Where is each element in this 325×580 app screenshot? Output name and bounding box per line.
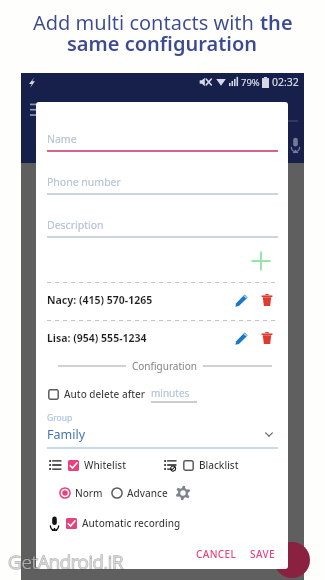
button[interactable]: Whitelist: [47, 458, 127, 472]
staticText: Group: [47, 412, 73, 424]
staticText: Advance: [127, 486, 168, 500]
button[interactable]: Auto delete after: [47, 383, 278, 405]
button[interactable]: Name: [47, 132, 278, 153]
button[interactable]: Delete: [261, 294, 273, 306]
staticText: the: [260, 9, 293, 36]
staticText: Auto delete after: [64, 387, 145, 401]
button[interactable]: Edit: [235, 332, 248, 345]
button[interactable]: Add contact: [274, 542, 310, 578]
staticText: Add multi contacts with: [33, 9, 260, 36]
button[interactable]: Phone number: [47, 175, 278, 196]
button[interactable]: CANCEL: [191, 544, 242, 562]
button[interactable]: Group: [47, 412, 278, 449]
staticText: Norm: [75, 486, 103, 500]
staticText: GetAndroid.iR: [8, 549, 123, 575]
staticText: Configuration: [132, 359, 197, 373]
button[interactable]: Advance: [111, 486, 168, 500]
button[interactable]: SAVE: [245, 544, 280, 562]
staticText: 79%: [241, 76, 260, 89]
button[interactable]: Norm: [59, 486, 103, 500]
staticText: Nacy: (415) 570-1265: [47, 293, 153, 307]
staticText: Lisa: (954) 555-1234: [47, 331, 147, 345]
button[interactable]: Description: [47, 218, 278, 239]
staticText: Description: [47, 218, 104, 232]
staticText: 02:32: [272, 75, 299, 89]
button[interactable]: Lisa: (954) 555-1234: [47, 327, 278, 349]
button[interactable]: Blacklist: [164, 458, 239, 472]
staticText: minutes: [151, 386, 190, 400]
staticText: SAVE: [250, 547, 275, 559]
button[interactable]: Add row: [250, 250, 272, 272]
staticText: same configuration: [67, 30, 258, 57]
button[interactable]: Automatic recording: [47, 511, 278, 535]
staticText: Blacklist: [199, 458, 239, 472]
staticText: GetAndroid.iR: [8, 549, 123, 575]
staticText: Family: [47, 426, 86, 443]
button[interactable]: Voice search: [290, 137, 301, 153]
staticText: CANCEL: [196, 547, 237, 559]
staticText: Name: [47, 132, 77, 146]
button[interactable]: Advanced settings: [175, 485, 191, 501]
button[interactable]: Menu: [30, 103, 38, 117]
button[interactable]: Edit: [235, 294, 248, 307]
staticText: Whitelist: [84, 458, 127, 472]
button[interactable]: Nacy: (415) 570-1265: [47, 289, 278, 311]
staticText: Automatic recording: [82, 516, 181, 530]
button[interactable]: Delete: [261, 332, 273, 344]
staticText: Phone number: [47, 175, 121, 189]
